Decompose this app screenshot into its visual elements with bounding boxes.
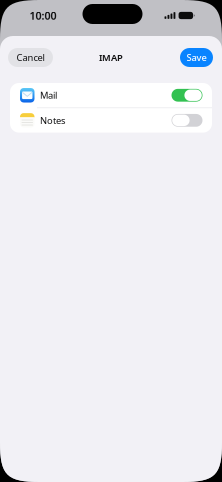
staticText: 10:00 [29, 8, 56, 23]
staticText: Cancel [16, 51, 44, 64]
staticText: Save [186, 51, 206, 64]
button[interactable]: Notes [10, 108, 212, 133]
button[interactable]: Cancel [8, 48, 53, 67]
button[interactable]: Save [180, 48, 213, 67]
staticText: IMAP [99, 51, 123, 64]
staticText: Mail [40, 89, 57, 101]
button[interactable]: Mail [10, 83, 212, 107]
staticText: Notes [40, 114, 65, 127]
